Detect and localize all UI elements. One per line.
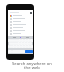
button[interactable] bbox=[8, 23, 33, 26]
button[interactable]: Search bbox=[25, 50, 33, 53]
button[interactable] bbox=[8, 26, 33, 29]
button[interactable] bbox=[8, 17, 33, 20]
button[interactable]: Clear bbox=[8, 11, 33, 14]
button[interactable] bbox=[8, 32, 33, 35]
button[interactable] bbox=[8, 14, 33, 17]
button[interactable] bbox=[8, 20, 33, 23]
button[interactable] bbox=[8, 29, 33, 32]
staticText: Search anywhere on the web bbox=[0, 61, 64, 71]
